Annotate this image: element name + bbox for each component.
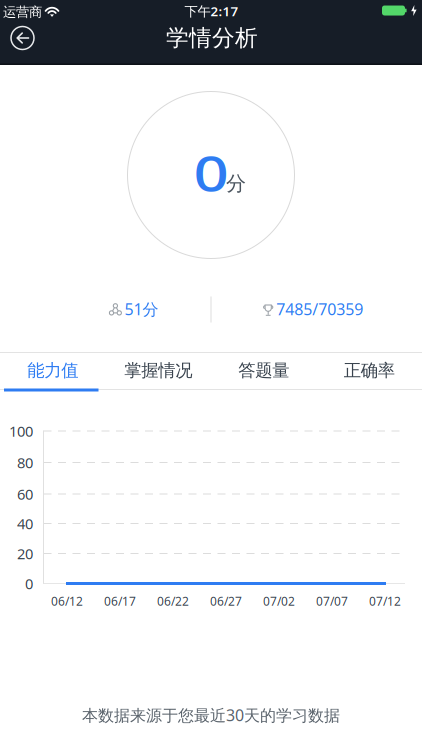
staticText: 学情分析	[166, 24, 258, 52]
staticText: 40	[17, 514, 33, 533]
staticText: 答题量	[238, 360, 289, 381]
staticText: 06/27	[210, 593, 242, 609]
staticText: 51分	[124, 298, 158, 320]
staticText: 0	[197, 140, 225, 205]
button[interactable]: 正确率	[316, 352, 422, 390]
staticText: 07/02	[263, 593, 295, 609]
staticText: 60	[17, 484, 33, 504]
staticText: 20	[17, 544, 33, 563]
button[interactable]: 掌握情况	[105, 352, 211, 390]
staticText: 运营商	[3, 4, 42, 20]
staticText: 分	[226, 171, 246, 196]
button[interactable]: 答题量	[211, 352, 316, 390]
staticText: 下午2:17	[184, 2, 238, 20]
staticText: 7485/70359	[276, 298, 363, 320]
staticText: 掌握情况	[124, 360, 192, 381]
button[interactable]: 能力值	[0, 352, 105, 390]
staticText: 正确率	[344, 360, 395, 381]
staticText: 06/17	[104, 593, 136, 609]
staticText: 06/22	[157, 593, 189, 609]
staticText: 100	[9, 421, 33, 441]
staticText: 07/07	[316, 593, 348, 609]
staticText: 07/12	[369, 593, 401, 609]
button[interactable]: Back	[4, 20, 40, 56]
staticText: 06/12	[51, 593, 83, 609]
staticText: 本数据来源于您最近30天的学习数据	[82, 704, 340, 726]
staticText: 能力值	[27, 360, 78, 381]
staticText: 80	[17, 453, 33, 472]
staticText: 0	[25, 574, 33, 593]
